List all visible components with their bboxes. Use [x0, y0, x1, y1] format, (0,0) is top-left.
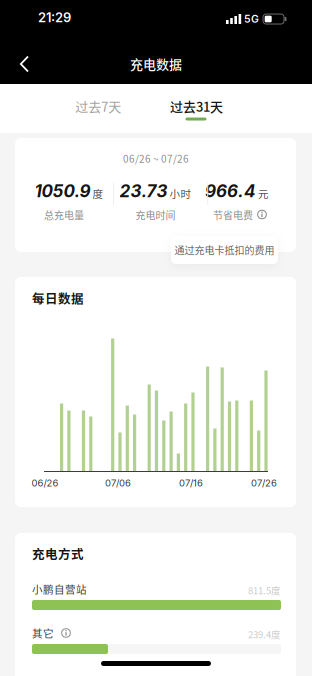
staticText: 23.73 — [119, 181, 167, 201]
staticText: 07/06 — [105, 477, 131, 489]
staticText: 966.4 — [205, 181, 256, 201]
staticText: 21:29 — [38, 10, 71, 25]
staticText: 充电时间 — [135, 208, 175, 222]
staticText: 过去7天 — [75, 97, 121, 115]
staticText: 充电数据 — [130, 54, 182, 73]
staticText: 07/26 — [251, 477, 277, 489]
staticText: 小鹏自营站 — [32, 581, 87, 597]
staticText: 07/16 — [179, 477, 203, 489]
staticText: 小时 — [169, 186, 191, 201]
staticText: 1050.9 — [34, 181, 90, 201]
staticText: 每日数据 — [32, 289, 84, 307]
staticText: 06/26 ~ 07/26 — [123, 151, 189, 166]
staticText: 239.4度 — [248, 627, 281, 641]
staticText: 06/26 — [31, 477, 58, 489]
staticText: 其它 — [32, 625, 54, 641]
staticText: 811.5度 — [248, 583, 281, 597]
staticText: 度 — [92, 186, 103, 201]
staticText: 充电方式 — [32, 544, 84, 563]
staticText: 节省电费 — [213, 208, 253, 222]
staticText: 5G — [244, 13, 259, 25]
staticText: 通过充电卡抵扣的费用 — [174, 243, 274, 257]
staticText: 过去31天 — [170, 97, 223, 115]
staticText: 总充电量 — [44, 208, 84, 222]
staticText: 元 — [258, 186, 269, 201]
